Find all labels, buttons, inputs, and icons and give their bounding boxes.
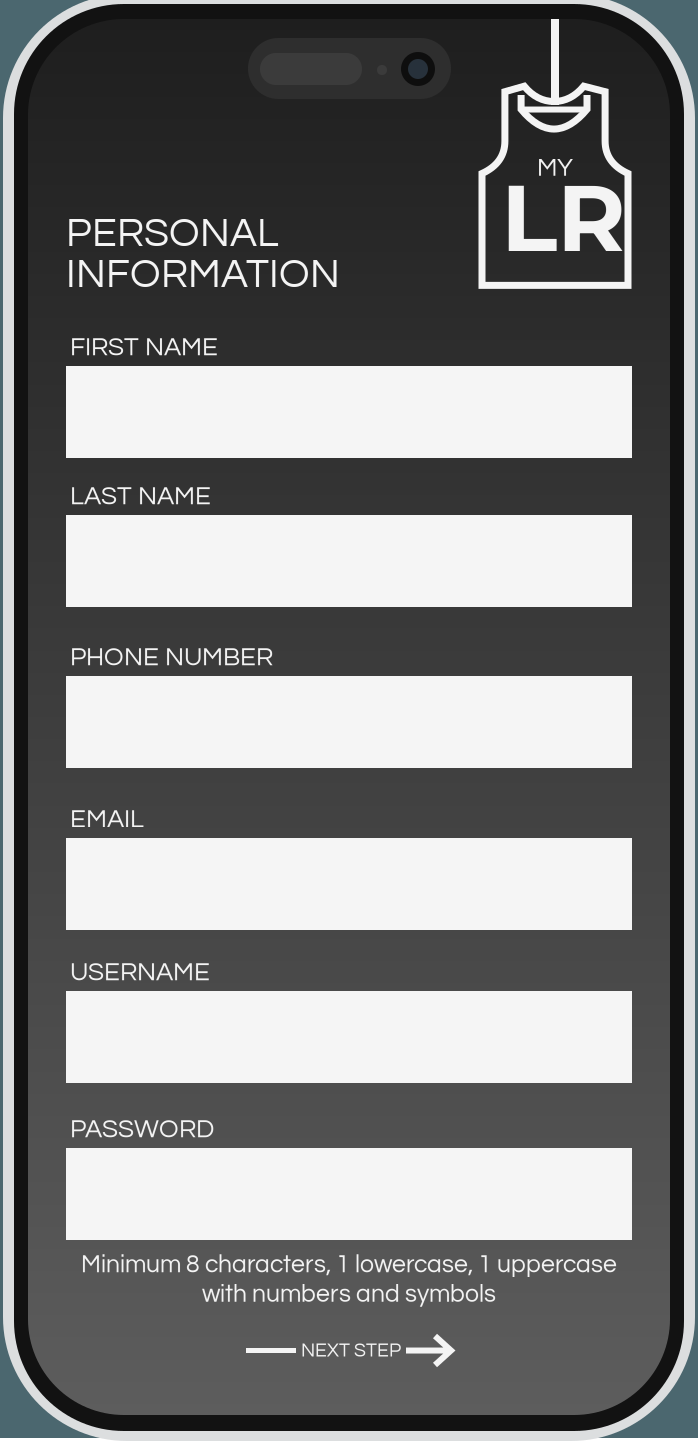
button[interactable]: PHONE NUMBER: [28, 19, 670, 1415]
staticText: LAST NAME: [70, 483, 211, 510]
staticText: PASSWORD: [70, 1116, 214, 1143]
staticText: FIRST NAME: [70, 334, 218, 361]
staticText: LR: [501, 161, 626, 275]
button[interactable]: NEXT STEP: [246, 1333, 455, 1368]
staticText: INFORMATION: [66, 254, 340, 295]
staticText: Minimum 8 characters, 1 lowercase, 1 upp…: [81, 1252, 617, 1277]
button[interactable]: EMAIL: [28, 19, 670, 1415]
staticText: EMAIL: [70, 806, 144, 833]
button[interactable]: LAST NAME: [28, 19, 670, 1415]
staticText: PERSONAL: [66, 213, 279, 254]
button[interactable]: FIRST NAME: [28, 19, 670, 1415]
staticText: NEXT STEP: [301, 1340, 401, 1360]
staticText: MY: [537, 155, 573, 181]
staticText: PHONE NUMBER: [70, 644, 273, 671]
staticText: with numbers and symbols: [202, 1281, 496, 1307]
button[interactable]: PASSWORD: [28, 19, 670, 1415]
button[interactable]: USERNAME: [28, 19, 670, 1415]
staticText: USERNAME: [70, 959, 210, 986]
